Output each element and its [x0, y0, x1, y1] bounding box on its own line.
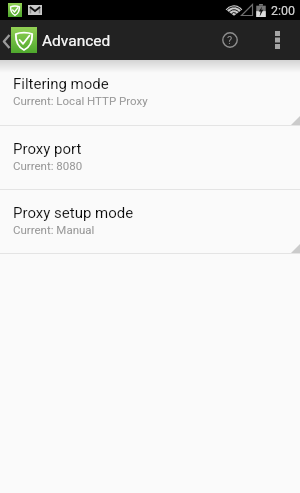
- button[interactable]: Help: [206, 20, 254, 60]
- staticText: Advanced: [42, 32, 111, 50]
- button[interactable]: Proxy port: [0, 126, 300, 189]
- staticText: 2:00: [271, 3, 296, 18]
- button[interactable]: Proxy setup mode: [0, 190, 300, 253]
- other: Navigate up: [3, 34, 10, 49]
- staticText: Proxy setup mode: [13, 204, 134, 222]
- staticText: Current: 8080: [13, 159, 83, 172]
- button[interactable]: Navigate up: [0, 27, 117, 53]
- staticText: Current: Local HTTP Proxy: [13, 94, 148, 107]
- staticText: ?: [227, 34, 233, 47]
- staticText: Current: Manual: [13, 223, 95, 236]
- button[interactable]: Filtering mode: [0, 60, 300, 125]
- staticText: Proxy port: [13, 140, 82, 158]
- staticText: Filtering mode: [13, 75, 109, 93]
- button[interactable]: More options: [254, 20, 300, 60]
